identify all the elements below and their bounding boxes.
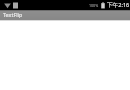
staticText: 下午2:16 [107, 1, 130, 9]
staticText: TextFlip [3, 11, 23, 18]
button[interactable]: TextFlip [0, 9, 26, 19]
staticText: 100% [89, 3, 99, 8]
